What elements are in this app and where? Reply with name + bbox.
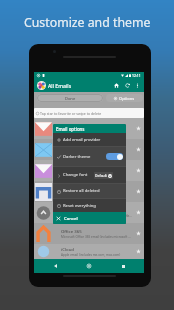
button[interactable]: Home xyxy=(76,259,102,273)
staticText: iCloud xyxy=(61,246,75,252)
staticText: 12:11 xyxy=(132,73,141,78)
button[interactable]: Favorite xyxy=(132,160,144,181)
staticText: Customize and theme xyxy=(24,14,151,31)
staticText: Options xyxy=(119,96,135,101)
button[interactable]: Favorite xyxy=(132,139,144,160)
staticText: Yahoo email (includes ymail, rocketmail) xyxy=(61,172,120,176)
staticText: Email options xyxy=(56,126,85,132)
button[interactable]: Done xyxy=(37,94,103,102)
button[interactable]: Outlook xyxy=(34,139,144,160)
button[interactable]: Reset everything xyxy=(53,199,126,212)
staticText: Google email (includes googlemail) xyxy=(61,130,113,134)
button[interactable]: Options xyxy=(106,94,143,102)
staticText: Free email from AOL (includes Compuserve… xyxy=(61,214,132,218)
staticText: Cancel xyxy=(64,215,78,221)
button[interactable]: Favorite xyxy=(132,118,144,139)
button[interactable]: More options xyxy=(133,81,142,90)
button[interactable]: Favorite xyxy=(132,244,144,259)
button[interactable]: Cancel xyxy=(53,212,126,224)
staticText: Yahoo xyxy=(61,165,74,171)
staticText: Office 365 xyxy=(61,228,82,234)
staticText: Change font xyxy=(63,172,88,178)
button[interactable]: Refresh xyxy=(122,80,133,91)
staticText: Add email provider xyxy=(63,137,101,143)
button[interactable]: Office 365 xyxy=(34,223,144,244)
staticText: Tap star to favorite or swipe to delete xyxy=(40,111,102,116)
staticText: Default xyxy=(95,173,107,178)
button[interactable]: Darker theme xyxy=(53,147,126,166)
staticText: Microsoft email (includes hotmail, live,… xyxy=(61,151,125,155)
staticText: All Emails xyxy=(48,82,72,89)
staticText: Restore all deleted xyxy=(63,188,100,194)
button[interactable]: Favorite xyxy=(132,181,144,202)
button[interactable]: AOL email xyxy=(34,202,144,223)
button[interactable]: Gmail xyxy=(34,118,144,139)
staticText: Done xyxy=(65,96,76,101)
button[interactable]: Restore all deleted xyxy=(53,184,126,198)
staticText: Gmail xyxy=(61,123,73,129)
button[interactable]: mail.com xyxy=(34,181,144,202)
button[interactable]: Back xyxy=(42,259,68,273)
staticText: Darker theme xyxy=(63,154,91,160)
staticText: Microsoft Office 365 email (includes mic… xyxy=(61,235,131,239)
button[interactable]: Yahoo xyxy=(34,160,144,181)
button[interactable]: Recent apps xyxy=(110,259,136,273)
button[interactable]: iCloud xyxy=(34,244,144,259)
button[interactable]: Favorite xyxy=(132,223,144,244)
button[interactable]: Home xyxy=(111,80,122,91)
button[interactable]: Change font xyxy=(53,167,126,183)
staticText: mail.com xyxy=(61,186,80,192)
staticText: Outlook xyxy=(61,144,78,150)
button[interactable]: Add email provider xyxy=(53,133,126,146)
staticText: AOL email xyxy=(61,207,82,213)
staticText: Reset everything xyxy=(63,203,96,209)
button[interactable]: Favorite xyxy=(132,202,144,223)
staticText: Apple email (includes me.com, mac.com) xyxy=(61,253,121,257)
